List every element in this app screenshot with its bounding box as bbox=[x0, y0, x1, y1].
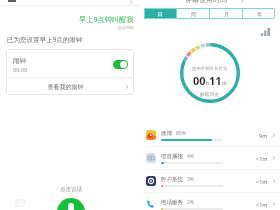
staticText: 4% bbox=[187, 153, 195, 160]
staticText: h bbox=[206, 80, 210, 87]
button[interactable]: Alarm toggle bbox=[113, 60, 128, 69]
staticText: 9m bbox=[259, 132, 268, 139]
staticText: 2% bbox=[187, 199, 195, 206]
staticText: 09:00 bbox=[13, 66, 28, 73]
staticText: 已为您设置早上9点的闹钟 bbox=[7, 35, 83, 44]
staticText: 00 bbox=[193, 73, 206, 88]
staticText: <1m bbox=[256, 201, 268, 208]
button[interactable]: Voice input bbox=[57, 198, 85, 210]
other: More bbox=[240, 0, 244, 3]
staticText: 月 bbox=[224, 11, 229, 17]
staticText: 闹钟 bbox=[13, 57, 26, 65]
staticText: 年 bbox=[257, 11, 262, 17]
button[interactable]: 卧户系统 bbox=[146, 170, 276, 192]
staticText: 使用手机时长共为 bbox=[192, 66, 228, 72]
staticText: <1m bbox=[256, 178, 268, 185]
staticText: 解锁34次 bbox=[200, 91, 220, 97]
staticText: 点击说话 bbox=[60, 186, 82, 193]
other: More bbox=[129, 0, 133, 4]
button[interactable]: 月 bbox=[210, 8, 242, 19]
button[interactable]: 电话服务 bbox=[146, 193, 276, 210]
staticText: 轻点编辑 bbox=[118, 25, 134, 30]
staticText: 屏幕使用时间 bbox=[185, 0, 227, 4]
button[interactable]: 微博 bbox=[146, 124, 276, 146]
other: Keyboard bbox=[16, 200, 25, 206]
staticText: 电话服务 bbox=[161, 199, 183, 206]
staticText: 查看我的闹钟 bbox=[6, 83, 125, 91]
staticText: 卧户系统 bbox=[161, 176, 183, 183]
staticText: 早上9点钟叫醒我 bbox=[79, 14, 134, 24]
button[interactable]: 日 bbox=[144, 8, 176, 19]
staticText: 85% bbox=[176, 130, 186, 137]
staticText: 3% bbox=[187, 176, 195, 183]
staticText: 11 bbox=[209, 73, 222, 88]
staticText: 语音播报 bbox=[161, 153, 183, 160]
staticText: 周 bbox=[191, 11, 196, 17]
button[interactable]: 语音播报 bbox=[146, 147, 276, 169]
button[interactable]: 查看我的闹钟 bbox=[6, 78, 134, 95]
other: Statistics bbox=[261, 28, 270, 36]
staticText: <1m bbox=[256, 155, 268, 162]
button[interactable]: 周 bbox=[177, 8, 209, 19]
button[interactable]: 年 bbox=[243, 8, 275, 19]
staticText: 微博 bbox=[161, 130, 172, 137]
staticText: m bbox=[222, 80, 227, 87]
staticText: 日 bbox=[158, 11, 163, 17]
